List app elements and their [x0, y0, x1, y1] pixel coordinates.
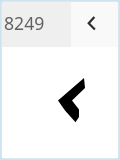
button[interactable]: Back — [71, 2, 118, 47]
staticText: 8249 — [4, 11, 45, 35]
button[interactable]: 8249 — [2, 2, 71, 47]
